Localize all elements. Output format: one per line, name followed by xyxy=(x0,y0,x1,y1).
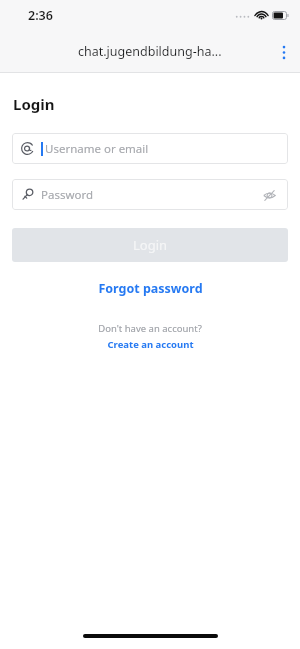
staticText: Password xyxy=(41,187,259,203)
button[interactable]: More options xyxy=(268,36,300,68)
staticText: chat.jugendbildung-ha... xyxy=(78,43,222,60)
button[interactable]: Show password xyxy=(259,185,279,205)
button[interactable]: Forgot password xyxy=(0,280,300,297)
button[interactable]: Create an account xyxy=(107,338,194,351)
staticText: Create an account xyxy=(107,338,194,351)
staticText: Login xyxy=(133,236,168,254)
staticText: Don't have an account? xyxy=(98,322,202,335)
staticText: Username or email xyxy=(45,141,279,157)
staticText: 2:36 xyxy=(28,7,53,24)
button[interactable]: Password xyxy=(12,179,288,210)
staticText: Login xyxy=(13,94,55,114)
button[interactable]: Username or email xyxy=(12,133,288,164)
staticText: Forgot password xyxy=(98,280,203,297)
